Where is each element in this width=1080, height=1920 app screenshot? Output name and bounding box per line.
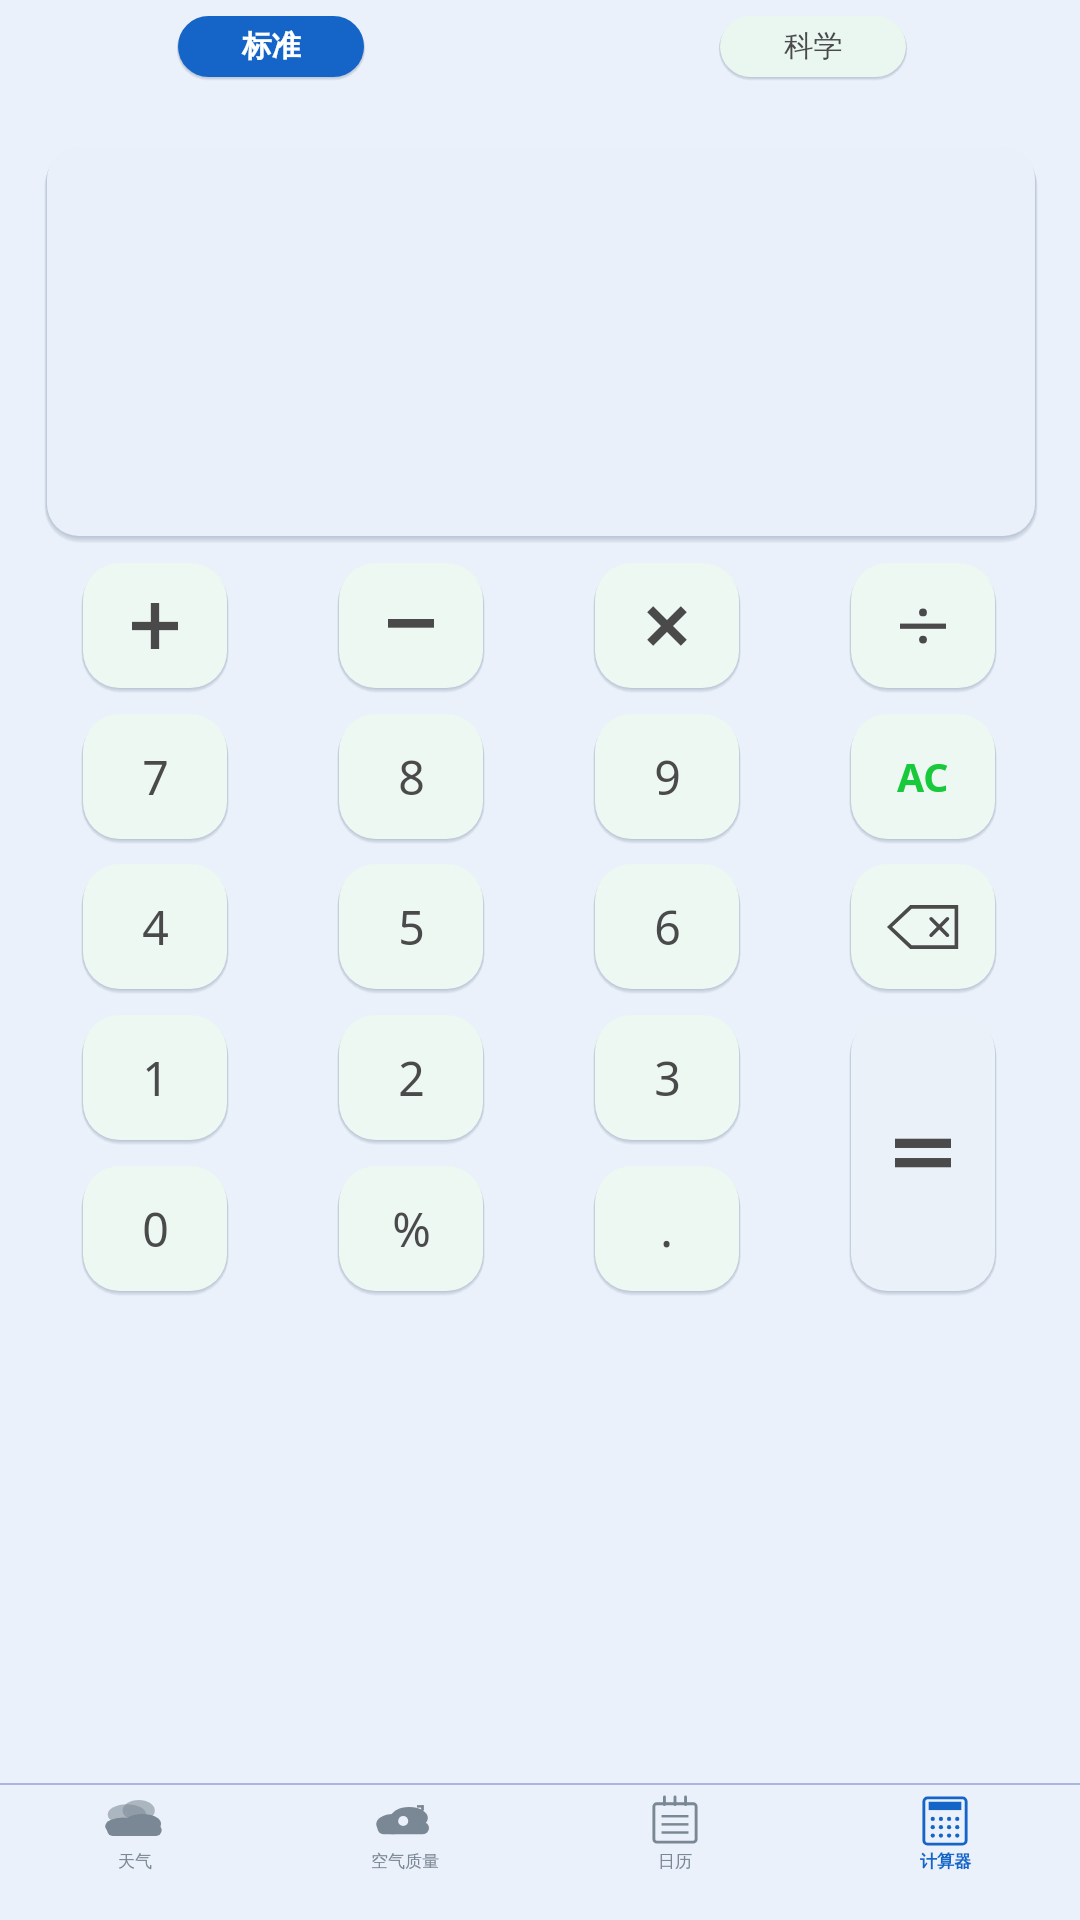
button[interactable]: 2: [339, 1015, 483, 1140]
staticText: 日历: [658, 1851, 692, 1872]
button[interactable]: 1: [83, 1015, 227, 1140]
staticText: 9: [654, 745, 681, 808]
button[interactable]: 8: [339, 714, 483, 839]
button[interactable]: Backspace: [851, 864, 995, 989]
staticText: 计算器: [920, 1851, 971, 1872]
button[interactable]: AC: [851, 714, 995, 839]
staticText: 3: [654, 1046, 681, 1109]
button[interactable]: [851, 563, 995, 688]
staticText: 1: [142, 1046, 169, 1109]
button[interactable]: 7: [83, 714, 227, 839]
button[interactable]: 6: [595, 864, 739, 989]
staticText: 5: [398, 895, 425, 958]
staticText: .: [660, 1195, 674, 1262]
staticText: AC: [897, 750, 949, 803]
staticText: 0: [142, 1197, 169, 1260]
button[interactable]: [83, 563, 227, 688]
staticText: 空气质量: [371, 1851, 439, 1872]
button[interactable]: 空气质量: [270, 1795, 540, 1920]
staticText: 6: [654, 895, 681, 958]
button[interactable]: 9: [595, 714, 739, 839]
button[interactable]: 3: [595, 1015, 739, 1140]
button[interactable]: 科学: [720, 16, 906, 77]
button[interactable]: 日历: [540, 1795, 810, 1920]
staticText: %: [392, 1197, 431, 1260]
staticText: 天气: [118, 1851, 152, 1872]
staticText: 标准: [242, 28, 301, 65]
button[interactable]: .: [595, 1166, 739, 1291]
button[interactable]: [339, 563, 483, 688]
staticText: 7: [142, 745, 169, 808]
staticText: 科学: [784, 28, 843, 65]
button[interactable]: 天气: [0, 1795, 270, 1920]
staticText: 4: [142, 895, 169, 958]
button[interactable]: 5: [339, 864, 483, 989]
button[interactable]: 0: [83, 1166, 227, 1291]
button[interactable]: 计算器: [810, 1795, 1080, 1920]
button[interactable]: %: [339, 1166, 483, 1291]
button[interactable]: [595, 563, 739, 688]
staticText: 8: [398, 745, 425, 808]
button[interactable]: [851, 1015, 995, 1291]
button[interactable]: 标准: [178, 16, 364, 77]
staticText: 2: [398, 1046, 425, 1109]
button[interactable]: 4: [83, 864, 227, 989]
